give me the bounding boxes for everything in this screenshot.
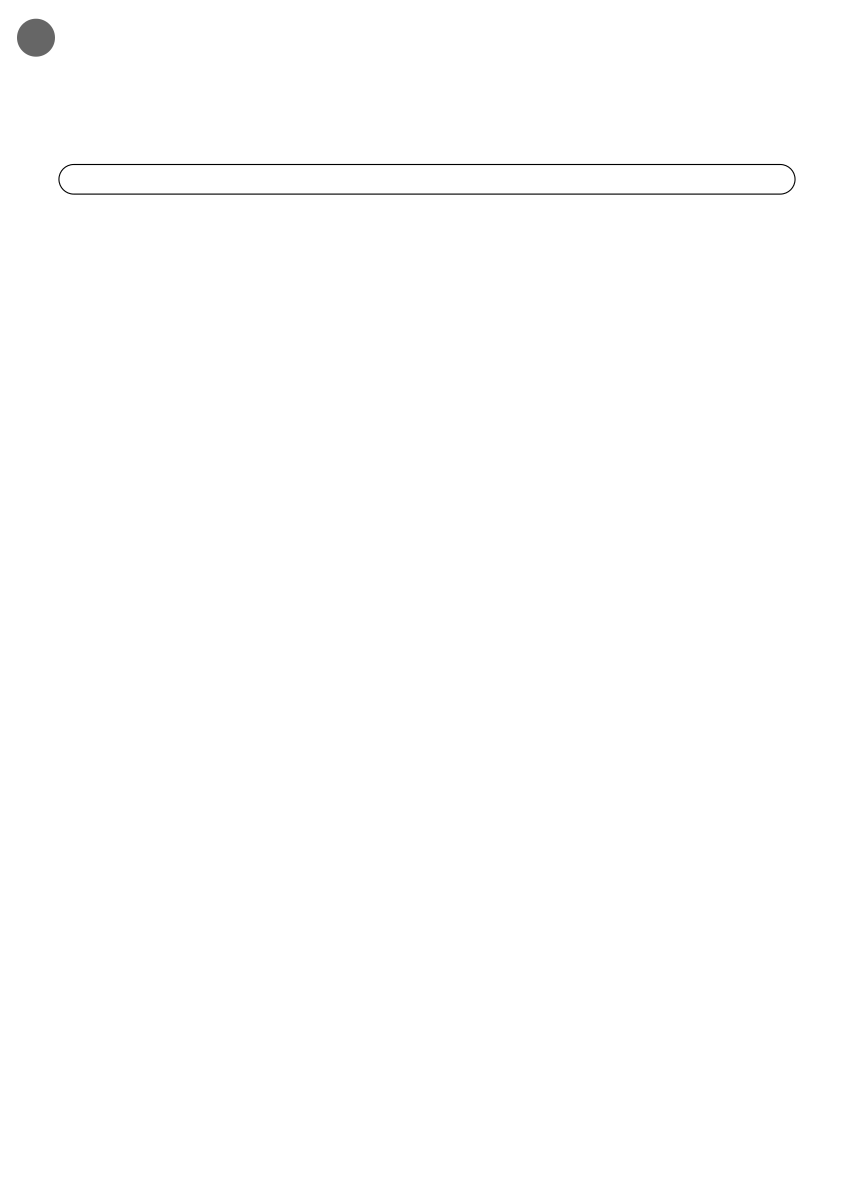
button[interactable]: Profile bbox=[17, 19, 55, 57]
button[interactable]: Search bbox=[59, 164, 795, 194]
